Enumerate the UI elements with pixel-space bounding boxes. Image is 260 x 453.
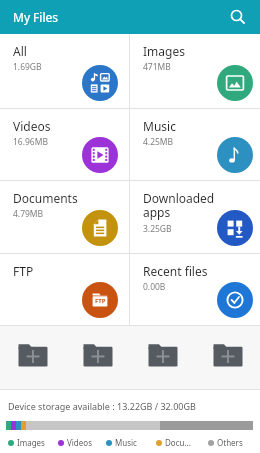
staticText: FTP	[13, 263, 34, 279]
staticText: My Files	[13, 9, 59, 25]
staticText: 4.79MB	[13, 208, 44, 220]
staticText: Others	[217, 437, 243, 448]
staticText: 16.96MB	[13, 136, 48, 148]
staticText: 4.25MB	[143, 136, 174, 148]
staticText: Music	[143, 118, 176, 134]
staticText: Images	[17, 437, 45, 448]
button[interactable]	[130, 326, 195, 389]
button[interactable]	[0, 326, 65, 389]
button[interactable]: Images	[130, 34, 260, 108]
staticText: 471MB	[143, 61, 171, 73]
staticText: FTP	[95, 297, 106, 305]
staticText: 0.00B	[143, 281, 166, 293]
button[interactable]: FTP	[0, 254, 129, 325]
staticText: Downloaded apps	[143, 190, 215, 221]
staticText: Music	[115, 437, 137, 448]
staticText: All	[13, 43, 27, 59]
staticText: Device storage available : 13.22GB / 32.…	[8, 400, 196, 412]
button[interactable]: Documents	[0, 181, 129, 253]
button[interactable]: Recent files	[130, 254, 260, 325]
button[interactable]	[195, 326, 260, 389]
button[interactable]: Videos	[0, 109, 129, 180]
button[interactable]	[221, 0, 255, 34]
staticText: 3.25GB	[143, 223, 172, 235]
button[interactable]: Downloaded apps	[130, 181, 260, 253]
staticText: 1.69GB	[13, 61, 42, 73]
button[interactable]: Music	[130, 109, 260, 180]
staticText: Videos	[13, 118, 51, 134]
staticText: Documents	[13, 190, 78, 206]
button[interactable]: All	[0, 34, 129, 108]
staticText: Recent files	[143, 263, 208, 279]
staticText: Videos	[67, 437, 92, 448]
staticText: Images	[143, 43, 185, 59]
button[interactable]	[65, 326, 130, 389]
staticText: Docu...	[165, 437, 191, 448]
